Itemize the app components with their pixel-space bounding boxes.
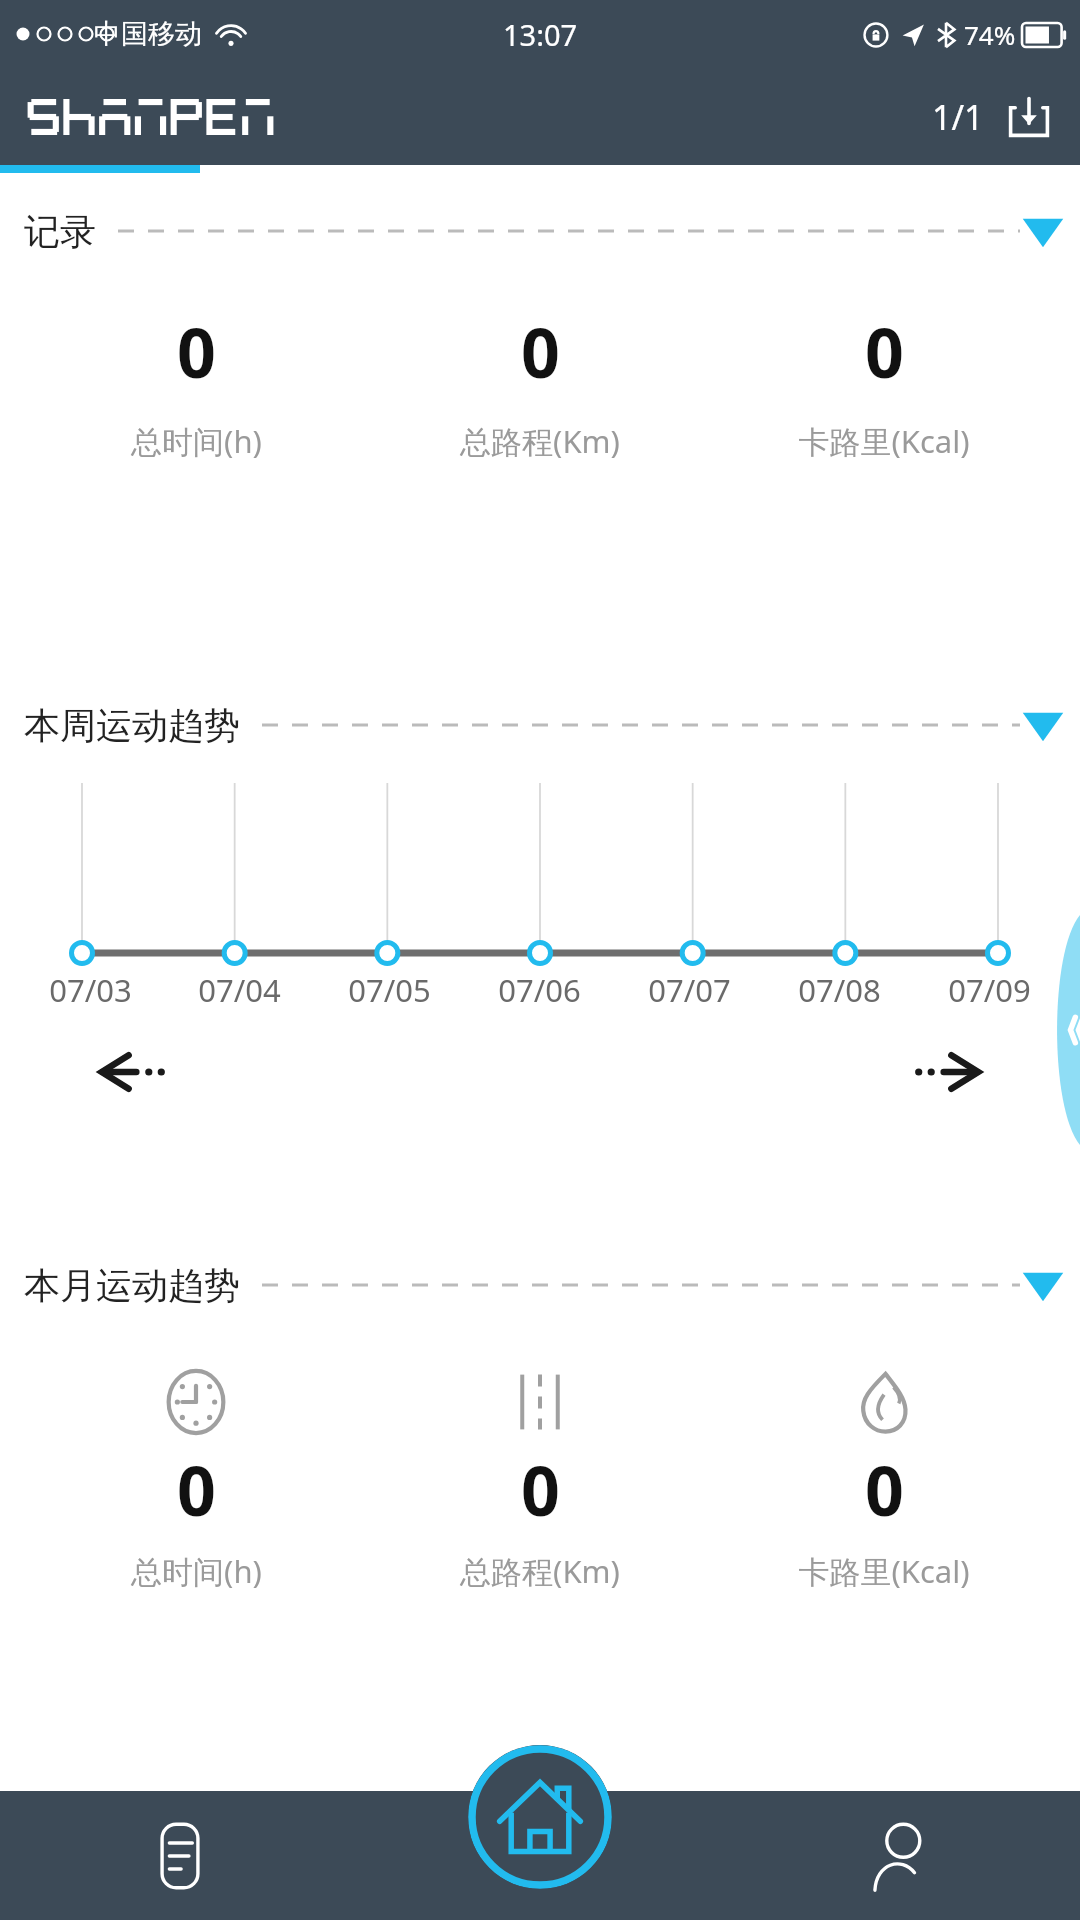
staticText: 07/03 [49, 969, 132, 1011]
staticText: 07/05 [348, 969, 431, 1011]
button[interactable]: Records [0, 1791, 360, 1920]
staticText: 07/04 [198, 969, 281, 1011]
staticText: 总时间(h) [131, 1550, 262, 1592]
button[interactable]: Home [468, 1745, 612, 1889]
button[interactable]: 记录 [0, 203, 1080, 259]
staticText: 总路程(Km) [460, 1550, 620, 1592]
staticText: 74% [964, 17, 1016, 52]
button[interactable]: Download [1002, 90, 1056, 144]
staticText: 0 [521, 1443, 560, 1536]
staticText: 记录 [24, 209, 96, 254]
staticText: 卡路里(Kcal) [798, 420, 970, 462]
button[interactable]: 0 [368, 1365, 712, 1592]
button[interactable]: Previous week [96, 1032, 216, 1112]
button[interactable]: 0 [24, 305, 368, 462]
staticText: 本月运动趋势 [24, 1263, 240, 1308]
button[interactable]: 0 [712, 1365, 1056, 1592]
staticText: 1/1 [932, 94, 984, 140]
button[interactable]: 0 [712, 305, 1056, 462]
staticText: 0 [177, 1443, 216, 1536]
staticText: 卡路里(Kcal) [798, 1550, 970, 1592]
staticText: 总时间(h) [131, 420, 262, 462]
staticText: 07/09 [948, 969, 1031, 1011]
button[interactable]: 0 [24, 1365, 368, 1592]
staticText: 总路程(Km) [460, 420, 620, 462]
button[interactable]: 0 [368, 305, 712, 462]
staticText: 0 [521, 305, 560, 398]
staticText: 本周运动趋势 [24, 703, 240, 748]
button[interactable]: Profile [720, 1791, 1080, 1920]
staticText: 07/06 [498, 969, 581, 1011]
staticText: 0 [865, 305, 904, 398]
button[interactable]: Open side panel [1046, 915, 1080, 1145]
staticText: 中国移动 [94, 17, 202, 51]
button[interactable]: Next week [864, 1032, 984, 1112]
staticText: 13:07 [503, 15, 578, 54]
staticText: 0 [865, 1443, 904, 1536]
button[interactable]: 本周运动趋势 [0, 697, 1080, 753]
staticText: 0 [177, 305, 216, 398]
staticText: 07/08 [798, 969, 881, 1011]
button[interactable]: 本月运动趋势 [0, 1257, 1080, 1313]
staticText: 07/07 [648, 969, 731, 1011]
